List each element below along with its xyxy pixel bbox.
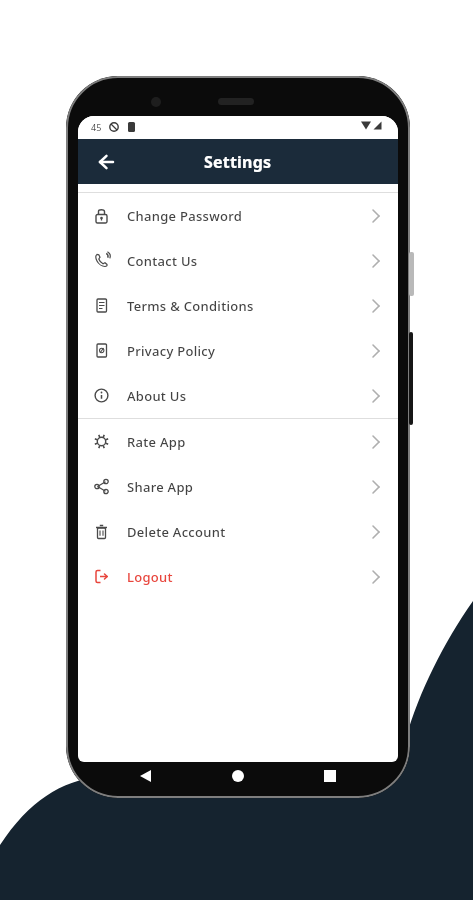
staticText: Delete Account — [127, 523, 226, 541]
button[interactable]: Contact Us — [78, 238, 398, 283]
button[interactable]: Rate App — [78, 419, 398, 464]
staticText: Privacy Policy — [127, 342, 216, 360]
button[interactable]: Terms & Conditions — [78, 283, 398, 328]
staticText: Contact Us — [127, 252, 198, 270]
button[interactable]: About Us — [78, 373, 398, 418]
staticText: Settings — [204, 151, 272, 173]
button[interactable]: Share App — [78, 464, 398, 509]
button[interactable]: Change Password — [78, 193, 398, 238]
staticText: Change Password — [127, 207, 243, 225]
staticText: About Us — [127, 387, 187, 405]
button[interactable]: Privacy Policy — [78, 328, 398, 373]
staticText: Share App — [127, 478, 194, 496]
button[interactable]: Logout — [78, 554, 398, 599]
staticText: Rate App — [127, 433, 186, 451]
staticText: 45 — [91, 121, 102, 133]
button[interactable]: Delete Account — [78, 509, 398, 554]
button[interactable] — [78, 139, 134, 184]
staticText: Terms & Conditions — [127, 297, 254, 315]
staticText: Logout — [127, 568, 173, 586]
